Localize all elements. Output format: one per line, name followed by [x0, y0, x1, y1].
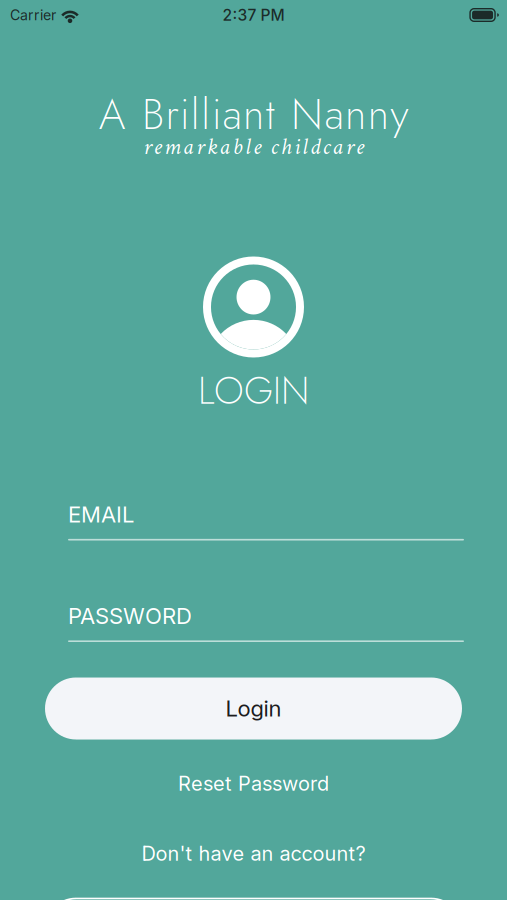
staticText: A Brilliant Nanny [99, 83, 408, 145]
staticText: Don't have an account? [141, 841, 365, 866]
staticText: Carrier [10, 6, 56, 23]
button[interactable]: Don't have an account? [103, 836, 403, 870]
button[interactable]: Login [45, 677, 462, 739]
button[interactable]: Sign Up [45, 898, 462, 900]
staticText: 2:37 PM [222, 6, 284, 24]
staticText: EMAIL [68, 501, 134, 528]
staticText: PASSWORD [68, 603, 192, 629]
staticText: Reset Password [178, 771, 329, 796]
staticText: remarkable childcare [143, 131, 364, 162]
button[interactable]: Reset Password [128, 766, 378, 800]
staticText: LOGIN [198, 363, 309, 418]
staticText: Login [225, 695, 281, 722]
